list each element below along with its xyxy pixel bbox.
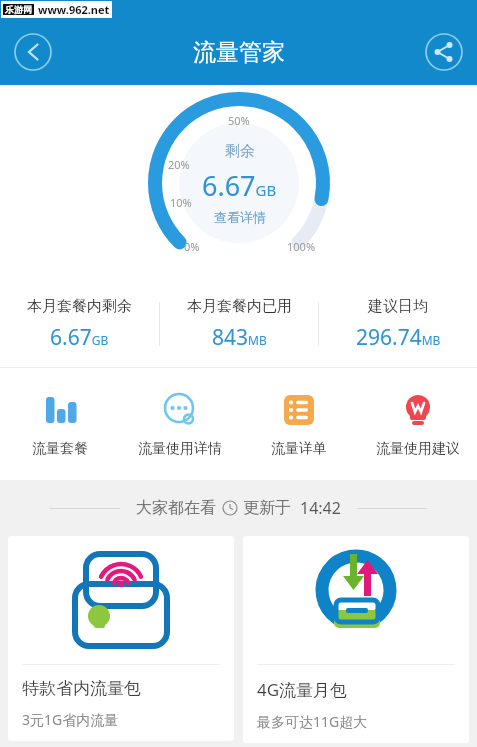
staticText: 100%	[287, 239, 316, 254]
staticText: 3元1G省内流量	[22, 710, 119, 729]
staticText: 流量详单	[271, 440, 327, 458]
button[interactable]: 流量使用建议	[358, 368, 477, 480]
staticText: www.962.net	[38, 2, 110, 17]
staticText: 14:42	[300, 497, 341, 519]
staticText: 4G流量月包	[257, 678, 348, 701]
staticText: 843MB	[212, 323, 267, 352]
staticText: 流量使用建议	[376, 440, 460, 458]
button[interactable]: 流量使用详情	[120, 368, 239, 480]
staticText: 大家都在看	[136, 498, 216, 518]
staticText: 乐游网	[5, 4, 32, 15]
staticText: 10%	[170, 195, 192, 210]
staticText: 流量使用详情	[138, 440, 222, 458]
button[interactable]: 本月套餐内剩余	[0, 297, 159, 352]
staticText: 本月套餐内剩余	[27, 297, 132, 316]
button[interactable]: 特款省内流量包	[8, 536, 234, 741]
staticText: 更新于	[243, 498, 291, 518]
button[interactable]: 流量套餐	[0, 368, 120, 480]
button[interactable]: 建议日均	[319, 297, 477, 352]
staticText: 查看详情	[214, 209, 266, 225]
button[interactable]: 流量详单	[239, 368, 358, 480]
button[interactable]: 本月套餐内已用	[160, 297, 318, 352]
staticText: 20%	[168, 157, 190, 172]
button[interactable]: 4G流量月包	[243, 536, 469, 743]
staticText: 本月套餐内已用	[187, 297, 292, 316]
staticText: 6.67GB	[202, 167, 277, 204]
staticText: 剩余	[225, 142, 255, 161]
staticText: 流量套餐	[32, 440, 88, 458]
staticText: 特款省内流量包	[22, 678, 141, 699]
staticText: 最多可达11G超大	[257, 712, 368, 731]
staticText: 流量管家	[193, 38, 285, 67]
button[interactable]: 剩余	[179, 123, 299, 243]
staticText: 6.67GB	[50, 323, 109, 352]
staticText: 296.74MB	[356, 323, 441, 352]
staticText: 0%	[184, 239, 200, 254]
staticText: 建议日均	[368, 297, 428, 316]
button[interactable]: Back	[13, 32, 53, 72]
staticText: 50%	[228, 113, 250, 128]
button[interactable]: Share	[424, 32, 464, 72]
